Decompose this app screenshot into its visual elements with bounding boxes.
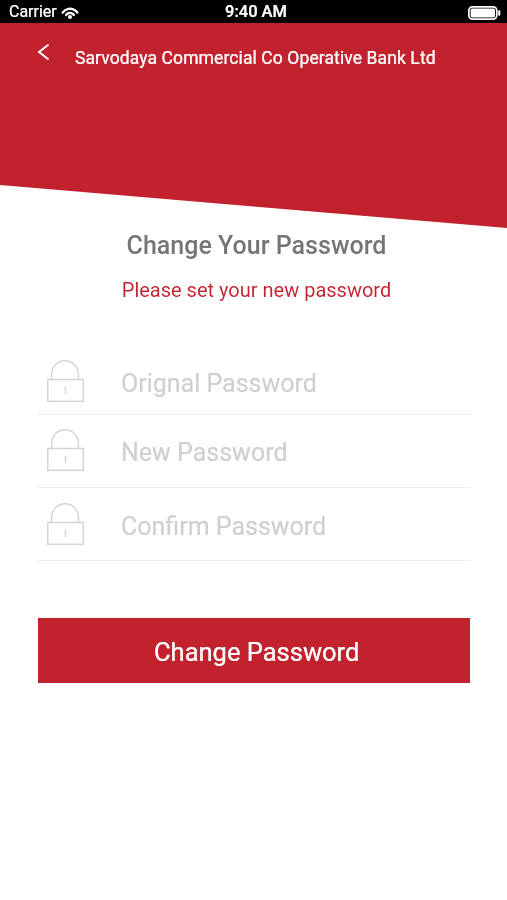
staticText: Orignal Password [121,369,317,398]
button[interactable]: Change Password [38,618,470,683]
staticText: Sarvodaya Commercial Co Operative Bank L… [75,48,436,69]
staticText: Carrier [9,2,57,21]
button[interactable]: New Password [38,418,469,482]
button[interactable]: Confirm Password [38,492,469,556]
staticText: Confirm Password [121,512,327,541]
staticText: Please set your new password [3,278,507,301]
staticText: Change Your Password [3,231,507,260]
button[interactable]: Orignal Password [38,349,469,413]
staticText: Change Password [154,637,360,667]
staticText: 9:40 AM [225,2,288,21]
staticText: New Password [121,438,288,467]
button[interactable]: Back [25,35,61,69]
